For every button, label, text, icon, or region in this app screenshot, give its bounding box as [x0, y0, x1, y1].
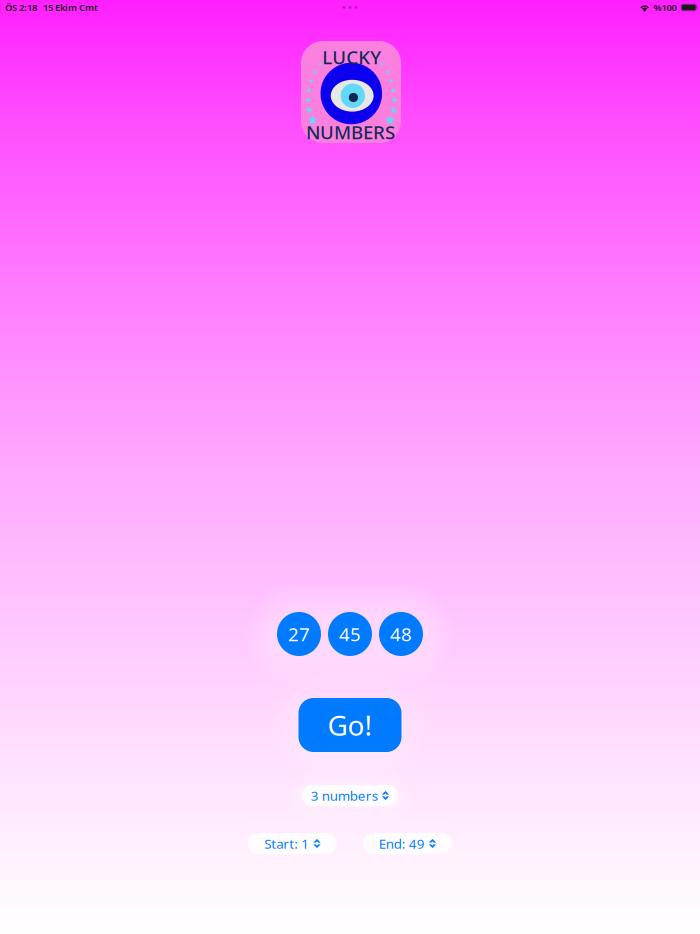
- button[interactable]: 3 numbers: [301, 785, 398, 806]
- button[interactable]: End: 49: [363, 833, 452, 854]
- staticText: Go!: [327, 706, 372, 744]
- staticText: 15 Ekim Cmt: [43, 1, 98, 14]
- staticText: %100: [653, 1, 676, 14]
- staticText: 27: [288, 622, 310, 646]
- staticText: ÖS 2:18: [5, 1, 37, 14]
- staticText: 3 numbers: [311, 787, 378, 804]
- staticText: Start: 1: [264, 835, 309, 852]
- staticText: End: 49: [379, 835, 425, 852]
- staticText: 45: [339, 622, 361, 646]
- staticText: NUMBERS: [306, 120, 395, 144]
- button[interactable]: Start: 1: [248, 833, 337, 854]
- staticText: LUCKY: [322, 45, 381, 69]
- staticText: 48: [390, 622, 412, 646]
- button[interactable]: Go!: [298, 698, 401, 752]
